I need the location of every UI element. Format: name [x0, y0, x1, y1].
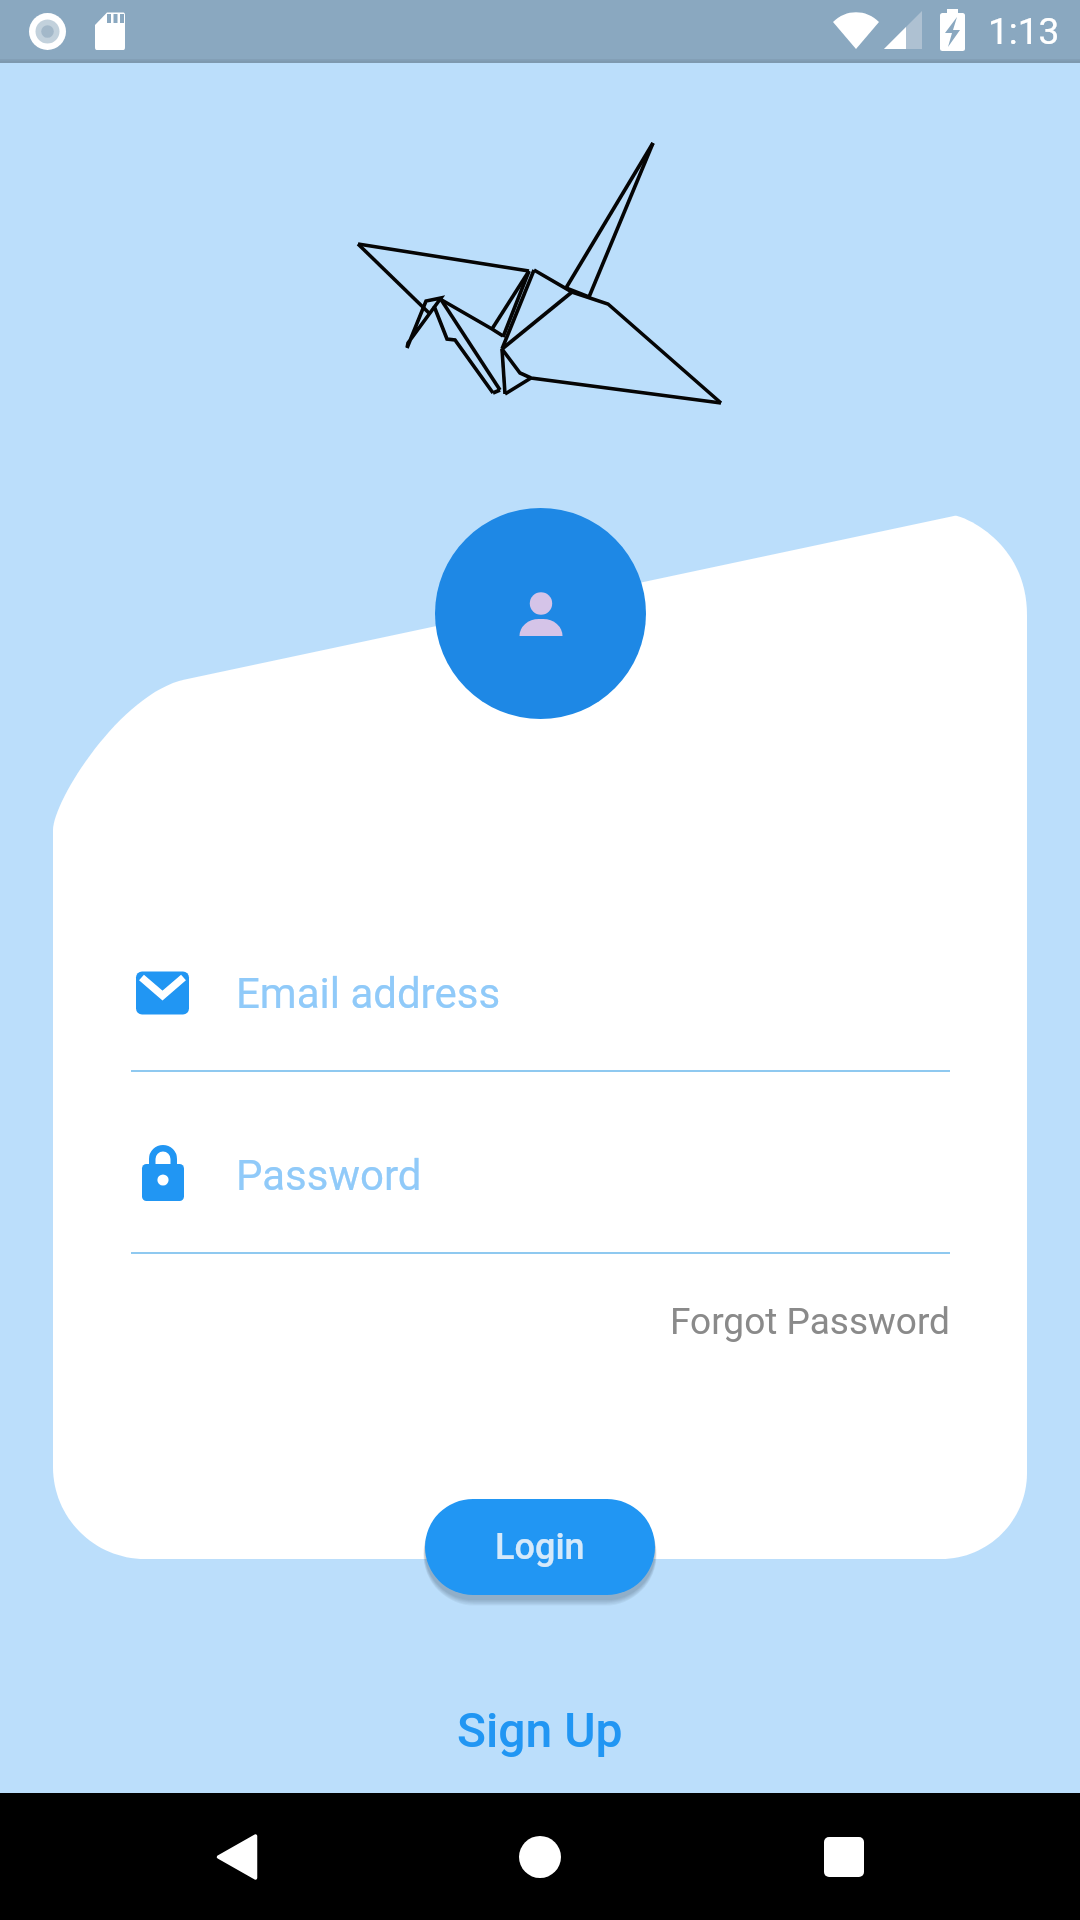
button[interactable]: Password	[136, 1125, 956, 1255]
staticText: Sign Up	[457, 1702, 623, 1758]
button[interactable]: Recent apps	[799, 1812, 889, 1902]
staticText: Forgot Password	[670, 1300, 950, 1343]
button[interactable]: Forgot Password	[640, 1286, 950, 1356]
button[interactable]: Sign Up	[0, 1682, 1080, 1778]
staticText: 1:13	[988, 10, 1060, 53]
button[interactable]: Email address	[136, 943, 956, 1073]
staticText: Login	[495, 1526, 585, 1568]
button[interactable]: Profile avatar	[435, 508, 646, 719]
button[interactable]: Login	[425, 1499, 655, 1595]
button[interactable]: Home	[495, 1812, 585, 1902]
button[interactable]: Back	[192, 1812, 282, 1902]
staticText: Password	[236, 1151, 422, 1200]
staticText: Email address	[236, 969, 501, 1018]
